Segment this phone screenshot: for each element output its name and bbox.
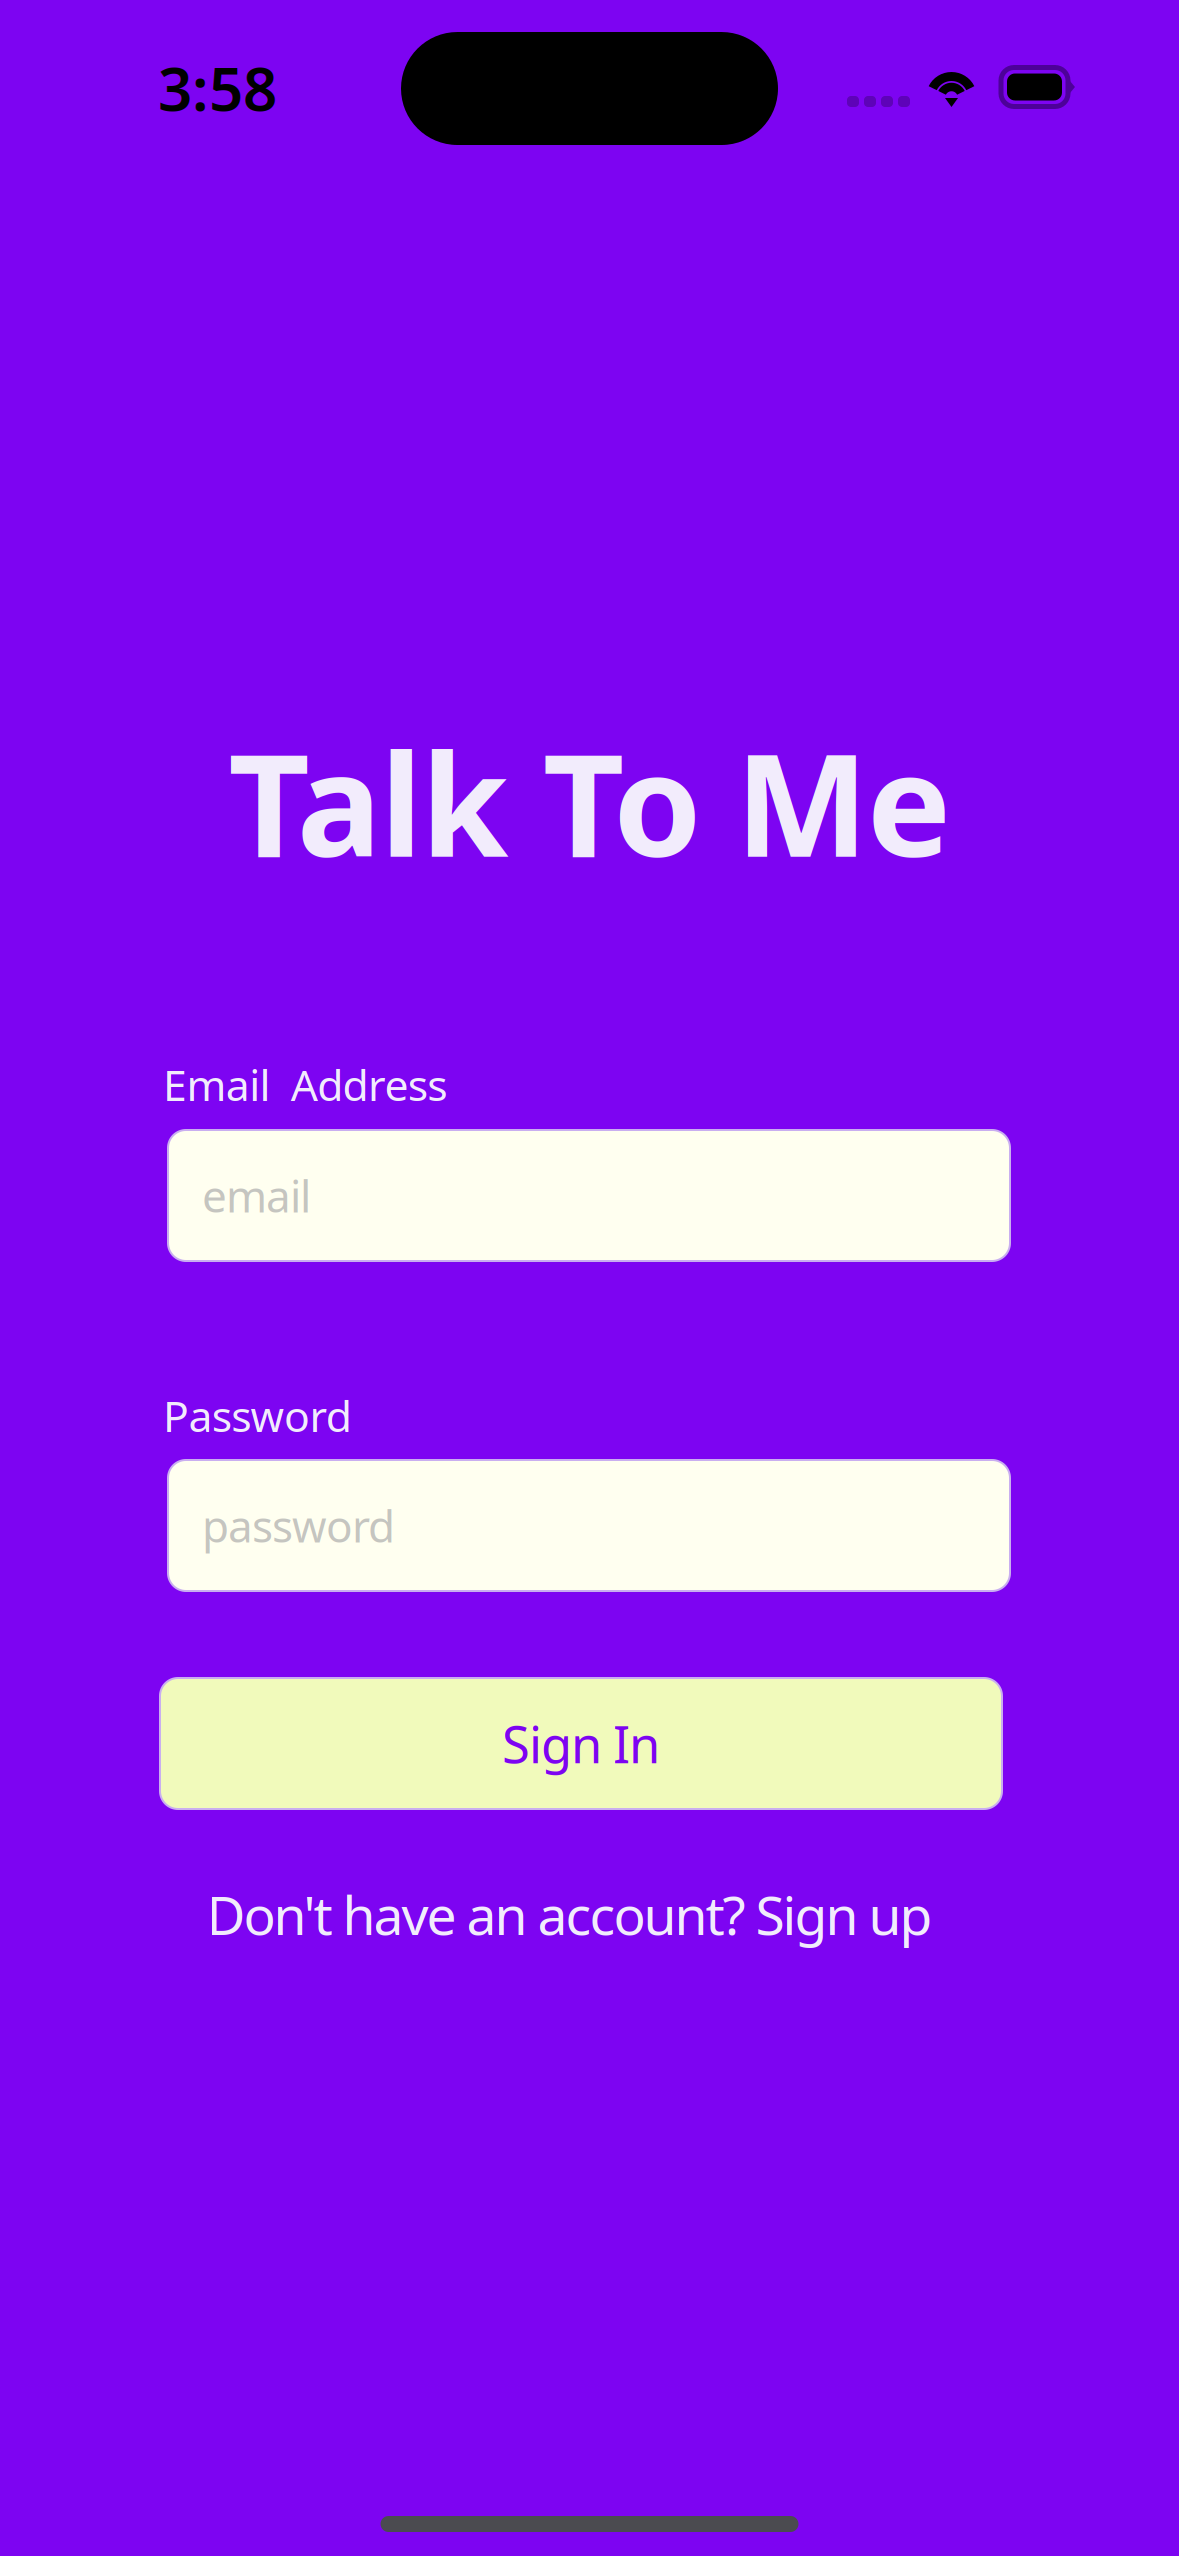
button[interactable]: password xyxy=(168,1460,1010,1591)
button[interactable]: Don't have an account? Sign up xyxy=(206,1879,932,1950)
button[interactable]: Sign In xyxy=(160,1678,1002,1809)
staticText: Talk To Me xyxy=(228,708,951,896)
staticText: Email Address xyxy=(163,1056,447,1113)
button[interactable]: email xyxy=(168,1130,1010,1261)
staticText: Don't have an account? Sign up xyxy=(206,1879,932,1950)
staticText: 3:58 xyxy=(158,48,277,128)
staticText: password xyxy=(202,1496,395,1555)
staticText: Sign In xyxy=(502,1710,660,1777)
staticText: email xyxy=(202,1166,311,1225)
staticText: Password xyxy=(163,1387,352,1444)
